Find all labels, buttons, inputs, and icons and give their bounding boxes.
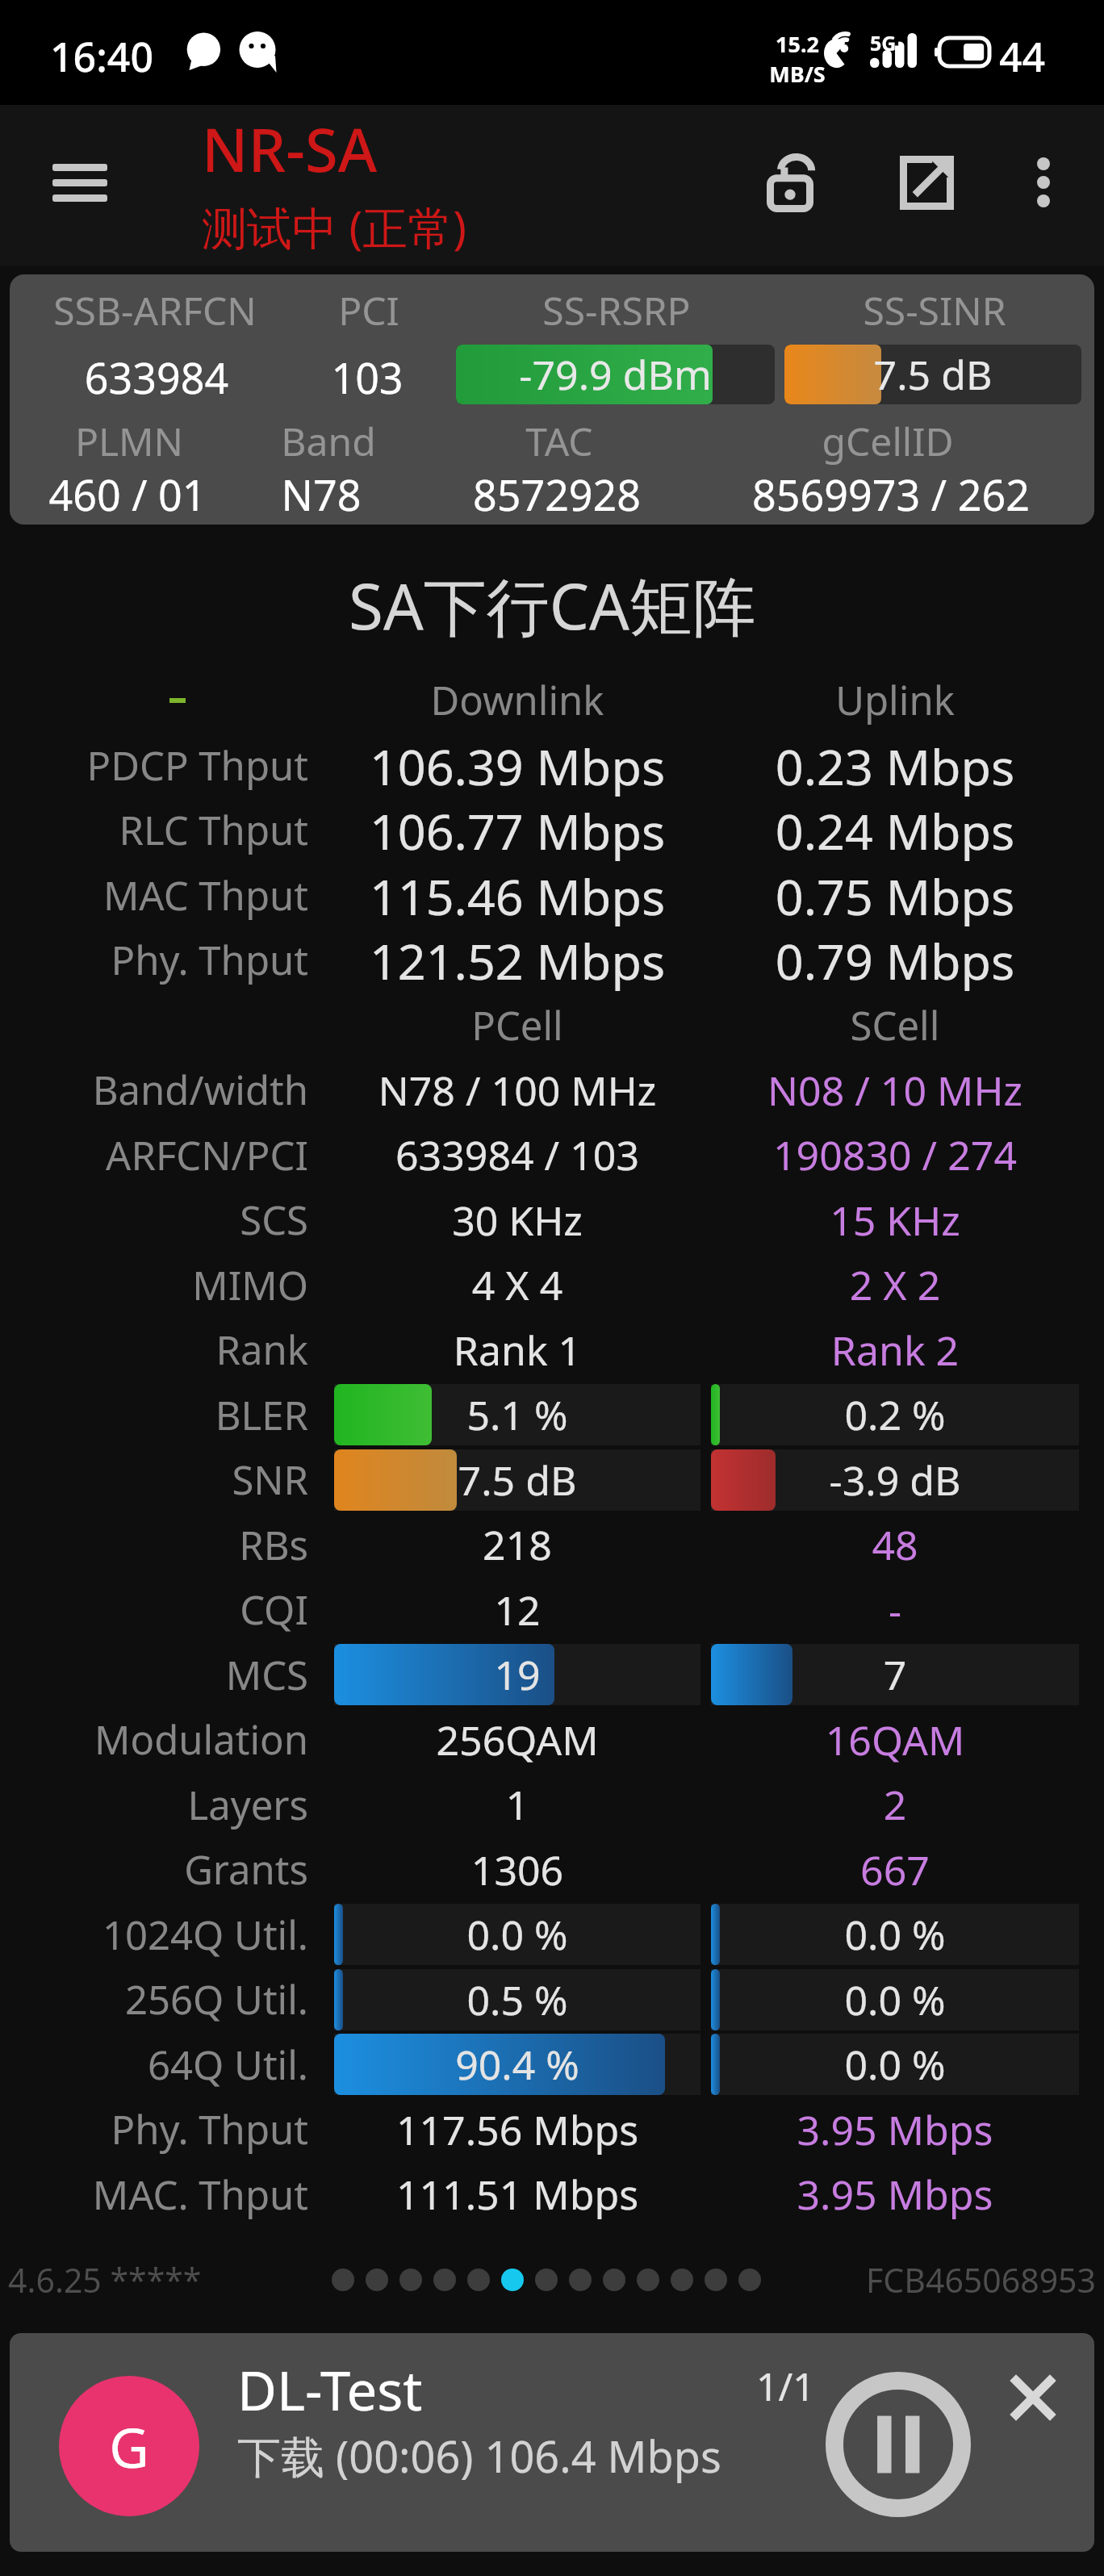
staticText: 256Q Util. [0,1972,308,2026]
staticText: 1/1 [756,2360,815,2412]
button[interactable]: RBs [0,1512,1104,1577]
staticText: 0.23 Mbps [711,733,1079,797]
staticText: 19 [334,1647,700,1702]
staticText: 0.2 % [711,1387,1079,1442]
staticText: SCS [0,1193,308,1247]
staticText: -3.9 dB [711,1453,1079,1508]
button[interactable]: MIMO [0,1252,1104,1317]
staticText: 256QAM [334,1712,700,1767]
button[interactable]: 64Q Util. [0,2032,1104,2097]
button[interactable]: SNR [0,1447,1104,1512]
staticText: 4 X 4 [334,1257,700,1312]
button[interactable]: SSB-ARFCN [10,274,1094,525]
button[interactable]: Menu [0,102,160,263]
button[interactable]: MCS [0,1642,1104,1707]
button[interactable]: G [10,2333,1094,2552]
button[interactable]: More options [991,102,1104,263]
staticText: TAC [398,415,721,467]
staticText: 115.46 Mbps [334,863,700,927]
staticText: gCellID [726,415,1049,467]
staticText: Band/width [0,1063,308,1117]
button[interactable]: Phy. Thput [0,927,1104,993]
staticText: 111.51 Mbps [334,2167,700,2222]
staticText: PDCP Thput [0,738,308,792]
button[interactable]: Rank [0,1317,1104,1382]
button[interactable]: Open in new window [862,102,991,263]
staticText: 12 [334,1583,700,1637]
button[interactable]: Phy. Thput [0,2097,1104,2162]
staticText: SS-SINR [773,284,1094,337]
staticText: 0.75 Mbps [711,863,1079,927]
staticText: 2 [711,1777,1079,1832]
button[interactable]: PDCP Thput [0,733,1104,797]
staticText: PCell [334,998,700,1052]
staticText: 0.0 % [334,1907,700,1962]
button[interactable]: Downlink [0,667,1104,733]
staticText: SNR [0,1453,308,1507]
staticText: 15 KHz [711,1193,1079,1248]
button[interactable]: Layers [0,1772,1104,1837]
staticText: 1306 [334,1842,700,1897]
staticText: 30 KHz [334,1193,700,1248]
staticText: 15.2 [776,29,819,59]
button[interactable]: Close [989,2354,1077,2441]
staticText: 0.79 Mbps [711,927,1079,993]
staticText: 2 X 2 [711,1257,1079,1312]
staticText: Phy. Thput [0,933,308,987]
staticText: 0.24 Mbps [711,797,1079,863]
staticText: 460 / 01 [10,466,289,523]
staticText: 8569973 / 262 [730,466,1052,523]
button[interactable]: CQI [0,1577,1104,1642]
staticText: SA下行CA矩阵 [0,562,1104,649]
button[interactable]: Lock [726,102,855,263]
staticText: 667 [711,1842,1079,1897]
button[interactable]: 256Q Util. [0,1967,1104,2032]
button[interactable]: SCS [0,1187,1104,1252]
button[interactable]: RLC Thput [0,797,1104,863]
staticText: 106.39 Mbps [334,733,700,797]
button[interactable]: Grants [0,1837,1104,1902]
button[interactable]: ARFCN/PCI [0,1123,1104,1187]
staticText: MB/S [769,59,826,89]
staticText: N78 / 100 MHz [334,1063,700,1118]
staticText: 633984 [10,349,318,406]
staticText: ARFCN/PCI [0,1128,308,1182]
staticText: - [711,1583,1079,1637]
staticText: SSB-ARFCN [10,284,316,337]
staticText: FCB465068953 [866,2257,1096,2302]
staticText: 90.4 % [334,2037,700,2092]
staticText: 633984 / 103 [334,1127,700,1182]
staticText: RBs [0,1518,308,1572]
staticText: 测试中 (正常) [202,196,467,257]
button[interactable]: Pause [818,2365,978,2524]
button[interactable]: MAC Thput [0,863,1104,927]
button[interactable]: MAC. Thput [0,2162,1104,2227]
staticText: G [109,2409,149,2484]
staticText: N08 / 10 MHz [711,1063,1079,1118]
staticText: 64Q Util. [0,2038,308,2092]
staticText: Rank [0,1323,308,1377]
staticText: 0.0 % [711,2037,1079,2092]
staticText: Modulation [0,1712,308,1767]
staticText: 1 [334,1777,700,1832]
staticText: 106.77 Mbps [334,797,700,863]
staticText: PCI [207,284,530,337]
button[interactable]: Modulation [0,1707,1104,1772]
staticText: 7.5 dB [334,1453,700,1508]
staticText: Grants [0,1842,308,1896]
staticText: 3.95 Mbps [711,2102,1079,2157]
staticText: 8572928 [395,466,718,523]
staticText: Rank 2 [711,1323,1079,1378]
button[interactable]: Band/width [0,1057,1104,1123]
button[interactable]: PCell [0,993,1104,1057]
button[interactable]: BLER [0,1382,1104,1447]
staticText: Band [167,415,490,467]
staticText: 16QAM [711,1712,1079,1767]
staticText: Layers [0,1778,308,1832]
button[interactable]: 1024Q Util. [0,1902,1104,1967]
staticText: 5G [870,29,897,56]
staticText: 0.0 % [711,1907,1079,1962]
staticText: 3.95 Mbps [711,2167,1079,2222]
staticText: Phy. Thput [0,2102,308,2156]
